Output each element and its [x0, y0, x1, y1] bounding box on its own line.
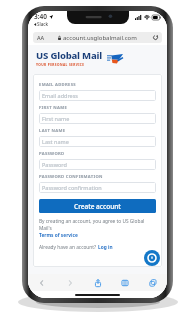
staticText: Email address: [42, 92, 78, 99]
staticText: Password confirmation: [42, 184, 102, 191]
staticText: By creating an account, you agree to US …: [39, 218, 156, 232]
staticText: Password: [42, 161, 67, 168]
staticText: PASSWORD: [39, 151, 65, 157]
staticText: AA: [37, 34, 45, 41]
staticText: 3:40: [34, 12, 47, 21]
staticText: First name: [42, 115, 70, 122]
button[interactable]: Create account: [39, 199, 156, 213]
button[interactable]: Bookmarks: [118, 276, 132, 290]
staticText: EMAIL ADDRESS: [39, 82, 76, 88]
button[interactable]: Password confirmation: [39, 182, 156, 193]
button[interactable]: Last name: [39, 136, 156, 147]
staticText: LAST NAME: [39, 128, 66, 134]
button[interactable]: Back: [35, 276, 49, 290]
button[interactable]: Reload: [153, 35, 158, 40]
staticText: FIRST NAME: [39, 105, 68, 111]
staticText: Already have an account?: [39, 244, 98, 251]
button[interactable]: Chat: [144, 250, 160, 266]
button[interactable]: Forward: [63, 276, 77, 290]
button[interactable]: First name: [39, 113, 156, 124]
staticText: PASSWORD CONFIRMATION: [39, 174, 103, 180]
button[interactable]: Email address: [39, 90, 156, 101]
staticText: US Global Mail: [36, 49, 103, 62]
button[interactable]: AA: [33, 32, 162, 43]
button[interactable]: Log in: [98, 244, 113, 251]
button[interactable]: Share: [91, 276, 105, 290]
button[interactable]: Password: [39, 159, 156, 170]
button[interactable]: Terms of service: [39, 232, 78, 239]
staticText: account.usglobalmail.com: [63, 34, 137, 42]
staticText: Last name: [42, 138, 69, 145]
staticText: YOUR PERSONAL SERVICE: [36, 63, 85, 67]
button[interactable]: Tabs: [146, 276, 160, 290]
staticText: Slack: [37, 21, 48, 27]
staticText: Create account: [74, 202, 121, 211]
